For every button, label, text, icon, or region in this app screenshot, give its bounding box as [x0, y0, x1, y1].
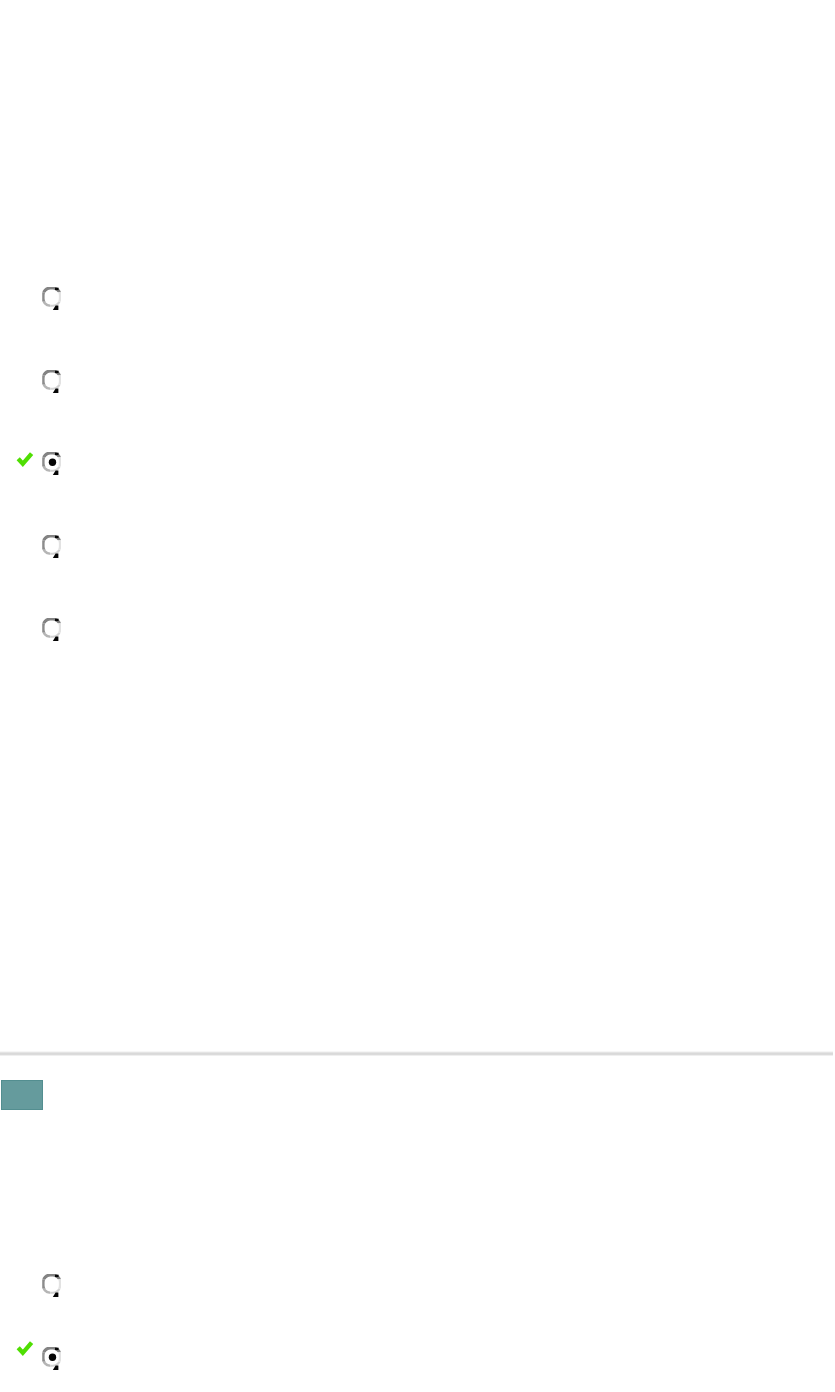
button[interactable]: Selected answer option [17, 448, 297, 476]
button[interactable]: Answer option [17, 366, 297, 394]
button[interactable]: Answer option [17, 531, 297, 559]
button[interactable]: Selected answer option [17, 1343, 297, 1371]
button[interactable]: Site logo [1, 1080, 43, 1110]
button[interactable]: Answer option [17, 1270, 297, 1298]
button[interactable]: Answer option [17, 283, 297, 311]
button[interactable]: Answer option [17, 614, 297, 642]
